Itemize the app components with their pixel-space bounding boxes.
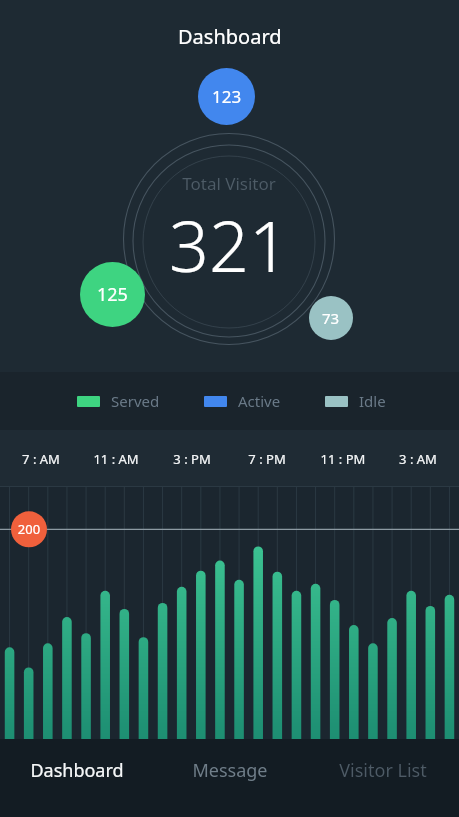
- button[interactable]: 123: [198, 68, 255, 125]
- staticText: 3 : PM: [157, 450, 227, 468]
- staticText: Visitor List: [339, 758, 427, 783]
- staticText: Idle: [359, 391, 386, 411]
- staticText: 73: [322, 308, 340, 328]
- staticText: 3 : AM: [383, 450, 453, 468]
- staticText: Active: [238, 391, 281, 411]
- staticText: 200: [11, 520, 47, 538]
- staticText: 11 : PM: [308, 450, 378, 468]
- button[interactable]: Dashboard: [0, 739, 153, 817]
- staticText: 321: [166, 197, 292, 292]
- staticText: Message: [192, 758, 268, 783]
- button[interactable]: 73: [309, 296, 353, 340]
- button[interactable]: Idle: [325, 385, 386, 417]
- staticText: 125: [97, 282, 128, 307]
- button[interactable]: Visitor List: [306, 739, 459, 817]
- staticText: 7 : PM: [232, 450, 302, 468]
- staticText: 11 : AM: [81, 450, 151, 468]
- button[interactable]: Message: [153, 739, 306, 817]
- staticText: Dashboard: [30, 758, 124, 783]
- button[interactable]: 125: [80, 262, 145, 327]
- staticText: Dashboard: [178, 23, 282, 50]
- staticText: Total Visitor: [166, 172, 292, 195]
- button[interactable]: Active: [204, 385, 281, 417]
- staticText: 123: [212, 85, 242, 108]
- button[interactable]: Served: [77, 385, 160, 417]
- staticText: 7 : AM: [6, 450, 76, 468]
- staticText: Served: [111, 391, 160, 411]
